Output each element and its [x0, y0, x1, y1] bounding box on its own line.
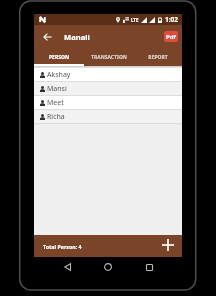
button[interactable]: Home — [100, 259, 116, 275]
staticText: REPORT — [148, 54, 168, 61]
button[interactable]: Add person — [160, 237, 176, 253]
button[interactable]: Mansi — [34, 82, 182, 96]
staticText: Pdf — [166, 33, 176, 41]
staticText: 1:02 — [165, 15, 178, 24]
button[interactable]: Recents — [141, 259, 157, 275]
button[interactable]: REPORT — [133, 48, 182, 66]
button[interactable]: Back — [59, 259, 75, 275]
button[interactable]: Richa — [34, 110, 182, 124]
button[interactable]: Akshay — [34, 68, 182, 82]
button[interactable]: Back — [40, 29, 55, 44]
staticText: Akshay — [47, 70, 71, 80]
button[interactable]: Pdf — [164, 31, 178, 42]
staticText: LTE — [131, 17, 139, 23]
staticText: Total Person: 4 — [43, 243, 82, 250]
staticText: Richa — [47, 112, 65, 122]
staticText: Meet — [47, 98, 64, 108]
staticText: Mansi — [47, 84, 67, 94]
button[interactable]: TRANSACTION — [84, 48, 133, 66]
staticText: TRANSACTION — [91, 54, 127, 61]
button[interactable]: PERSON — [34, 48, 84, 66]
button[interactable]: Meet — [34, 96, 182, 110]
staticText: PERSON — [49, 54, 69, 61]
staticText: Manali — [64, 32, 90, 42]
